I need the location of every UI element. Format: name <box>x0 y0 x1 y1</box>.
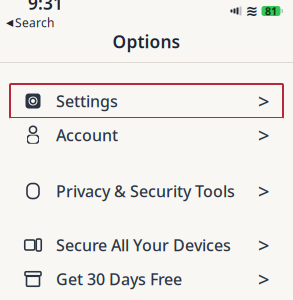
staticText: Privacy & Security Tools <box>56 180 235 202</box>
staticText: ≋ <box>245 3 257 19</box>
button[interactable]: Account <box>10 118 283 152</box>
button[interactable]: Privacy & Security Tools <box>10 174 283 208</box>
staticText: > <box>258 266 269 292</box>
staticText: > <box>258 178 269 204</box>
staticText: > <box>258 232 269 258</box>
button[interactable]: Settings <box>10 84 283 118</box>
staticText: 9:31 <box>28 0 63 14</box>
staticText: > <box>258 88 269 114</box>
button[interactable]: Secure All Your Devices <box>10 228 283 262</box>
staticText: Secure All Your Devices <box>56 234 231 256</box>
staticText: 81 <box>265 4 277 18</box>
staticText: Search <box>15 14 54 30</box>
staticText: Options <box>112 30 180 53</box>
staticText: Account <box>56 124 118 146</box>
staticText: ◀ <box>6 17 13 28</box>
button[interactable]: Get 30 Days Free <box>10 262 283 296</box>
staticText: Settings <box>56 90 118 112</box>
staticText: Get 30 Days Free <box>56 268 182 290</box>
staticText: > <box>258 122 269 148</box>
